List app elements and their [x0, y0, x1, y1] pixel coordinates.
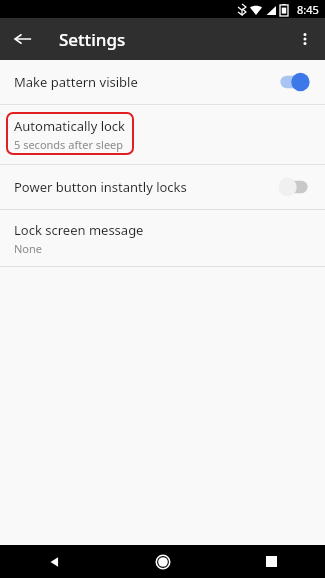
button[interactable]: Make pattern visible — [0, 60, 325, 104]
button[interactable]: Back — [6, 22, 40, 56]
button[interactable]: Lock screen message — [0, 210, 325, 266]
staticText: None — [14, 241, 43, 256]
button[interactable]: Back — [0, 545, 109, 578]
button[interactable]: Home — [109, 545, 217, 578]
staticText: Automatically lock — [14, 117, 126, 135]
staticText: 5 seconds after sleep — [14, 137, 124, 152]
button[interactable]: More options — [288, 22, 322, 56]
button[interactable]: Automatically lock — [0, 105, 325, 164]
staticText: Lock screen message — [14, 221, 144, 239]
button[interactable]: Recent apps — [217, 545, 325, 578]
button[interactable]: Power button instantly locks — [0, 165, 325, 209]
staticText: 8:45 — [297, 2, 319, 17]
staticText: Power button instantly locks — [14, 178, 277, 196]
staticText: Make pattern visible — [14, 73, 277, 91]
staticText: Settings — [59, 28, 126, 51]
